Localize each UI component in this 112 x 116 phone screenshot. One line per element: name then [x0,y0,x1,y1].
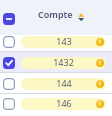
button[interactable]: Compte [38,8,78,22]
button[interactable]: Select [0,93,112,114]
button[interactable]: Select [0,31,112,52]
button[interactable]: Selected [0,52,112,73]
button[interactable]: 146 [21,98,106,110]
button[interactable]: 1432 [21,57,106,69]
button[interactable]: 143 [21,36,106,48]
button[interactable]: Select [0,73,112,94]
staticText: Compte [38,8,73,20]
button[interactable]: Sort [76,11,88,23]
staticText: 1432 [53,57,74,68]
staticText: 144 [56,78,72,89]
button[interactable]: Select [3,78,15,90]
button[interactable]: 144 [21,78,106,90]
button[interactable]: Selected [3,57,15,69]
staticText: 143 [56,36,72,47]
staticText: 146 [56,98,72,109]
button[interactable]: Select [3,98,15,110]
button[interactable]: Select all [3,13,15,25]
button[interactable]: Select [3,36,15,48]
